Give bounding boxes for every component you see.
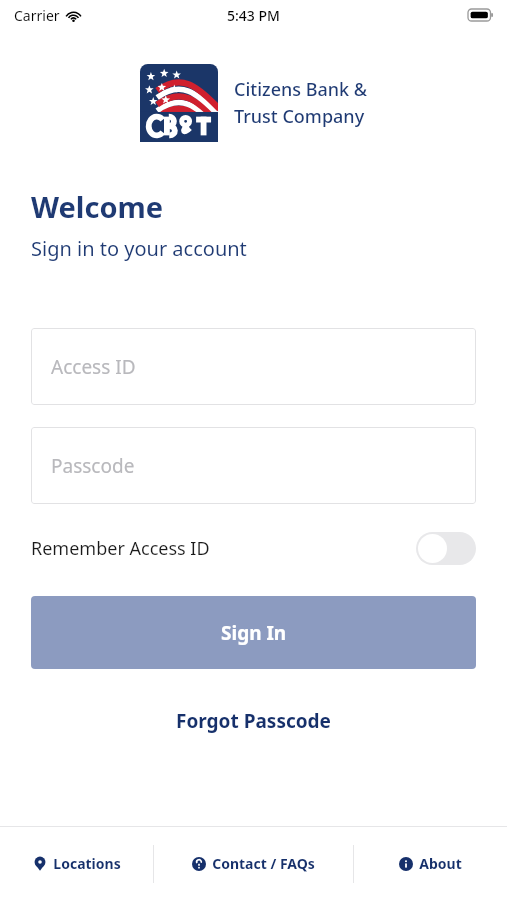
staticText: 5:43 PM bbox=[227, 6, 280, 25]
staticText: About bbox=[419, 854, 462, 873]
staticText: Carrier bbox=[14, 6, 60, 25]
staticText: Contact / FAQs bbox=[212, 854, 315, 873]
button[interactable]: Forgot Passcode bbox=[164, 702, 343, 740]
button[interactable]: About bbox=[354, 827, 507, 900]
button[interactable]: Passcode bbox=[31, 427, 476, 504]
staticText: Access ID bbox=[51, 354, 136, 380]
staticText: Welcome bbox=[31, 187, 164, 226]
staticText: Forgot Passcode bbox=[176, 708, 331, 734]
staticText: Remember Access ID bbox=[31, 536, 210, 561]
staticText: Sign In bbox=[221, 620, 287, 646]
button[interactable]: Locations bbox=[0, 827, 153, 900]
staticText: Citizens Bank & bbox=[234, 77, 368, 102]
staticText: Locations bbox=[53, 854, 121, 873]
staticText: Passcode bbox=[51, 453, 135, 479]
button[interactable]: Remember Access ID bbox=[31, 528, 476, 568]
button[interactable]: Sign In bbox=[31, 596, 476, 669]
staticText: Sign in to your account bbox=[31, 235, 247, 262]
button[interactable]: Contact / FAQs bbox=[154, 827, 353, 900]
button[interactable]: Access ID bbox=[31, 328, 476, 405]
staticText: Trust Company bbox=[234, 104, 365, 129]
